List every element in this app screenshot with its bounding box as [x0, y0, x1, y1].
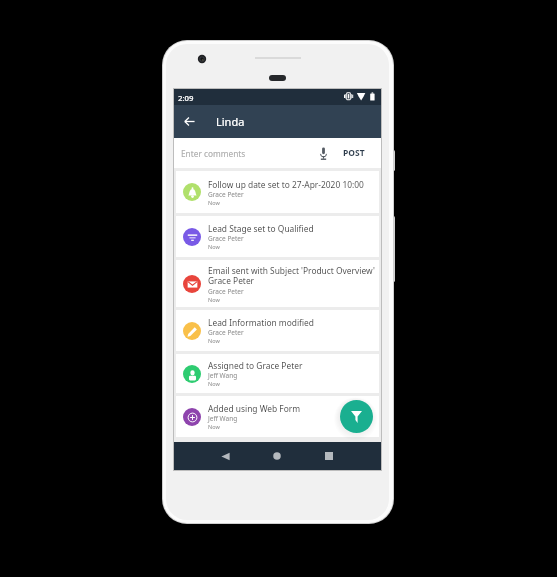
staticText: Follow up date set to 27-Apr-2020 10:00: [208, 179, 364, 190]
staticText: POST: [343, 147, 365, 159]
button[interactable]: Voice input: [315, 145, 331, 161]
staticText: Lead Stage set to Qualified: [208, 223, 314, 234]
staticText: Lead Information modified: [208, 317, 315, 328]
staticText: Now: [208, 423, 220, 430]
button[interactable]: Back: [200, 445, 251, 467]
staticText: Added using Web Form: [208, 403, 301, 414]
button[interactable]: Filter: [340, 400, 373, 433]
staticText: Linda: [216, 114, 245, 129]
staticText: Enter comments: [181, 148, 315, 159]
button[interactable]: Recents: [303, 445, 355, 467]
button[interactable]: Home: [251, 445, 303, 467]
staticText: Now: [208, 296, 220, 303]
staticText: 2:09: [178, 93, 194, 104]
staticText: Now: [208, 243, 220, 250]
button[interactable]: Lead Stage set to Qualified: [176, 216, 379, 257]
staticText: Grace Peter: [208, 190, 244, 199]
staticText: Assigned to Grace Peter: [208, 360, 303, 371]
button[interactable]: Email sent with Subject 'Product Overvie…: [176, 260, 379, 307]
button[interactable]: Lead Information modified: [176, 310, 379, 351]
button[interactable]: Assigned to Grace Peter: [176, 354, 379, 393]
button[interactable]: Follow up date set to 27-Apr-2020 10:00: [176, 171, 379, 213]
staticText: Jeff Wang: [208, 371, 238, 380]
staticText: Grace Peter: [208, 287, 244, 296]
staticText: Now: [208, 199, 220, 206]
staticText: Now: [208, 380, 220, 387]
staticText: Grace Peter: [208, 328, 244, 337]
button[interactable]: Back: [179, 111, 200, 132]
staticText: Jeff Wang: [208, 414, 238, 423]
staticText: Grace Peter: [208, 234, 244, 243]
staticText: Email sent with Subject 'Product Overvie…: [208, 265, 378, 287]
button[interactable]: Added using Web Form: [176, 396, 379, 437]
button[interactable]: POST: [343, 147, 365, 159]
staticText: Now: [208, 337, 220, 344]
